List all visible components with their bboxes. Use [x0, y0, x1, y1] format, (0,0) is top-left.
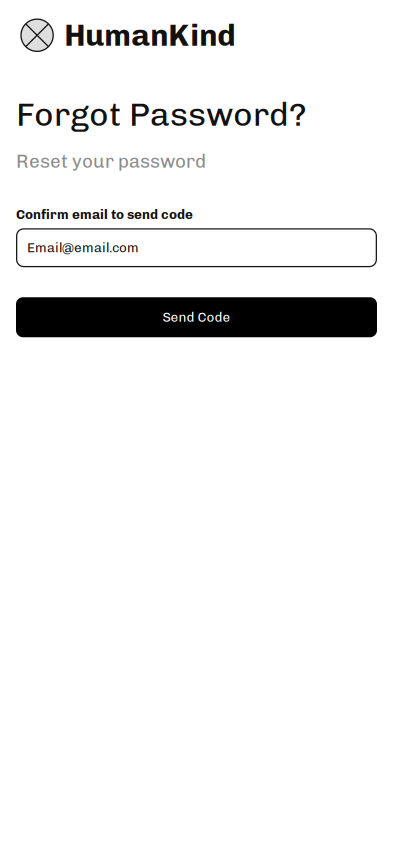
staticText: Send Code: [162, 309, 230, 325]
button[interactable]: Email@email.com: [16, 228, 377, 267]
staticText: Email@email.com: [27, 240, 139, 256]
staticText: HumanKind: [64, 17, 235, 53]
button[interactable]: Send Code: [16, 297, 377, 337]
staticText: Reset your password: [16, 150, 206, 172]
staticText: Confirm email to send code: [16, 206, 193, 222]
staticText: Forgot Password?: [16, 94, 307, 134]
